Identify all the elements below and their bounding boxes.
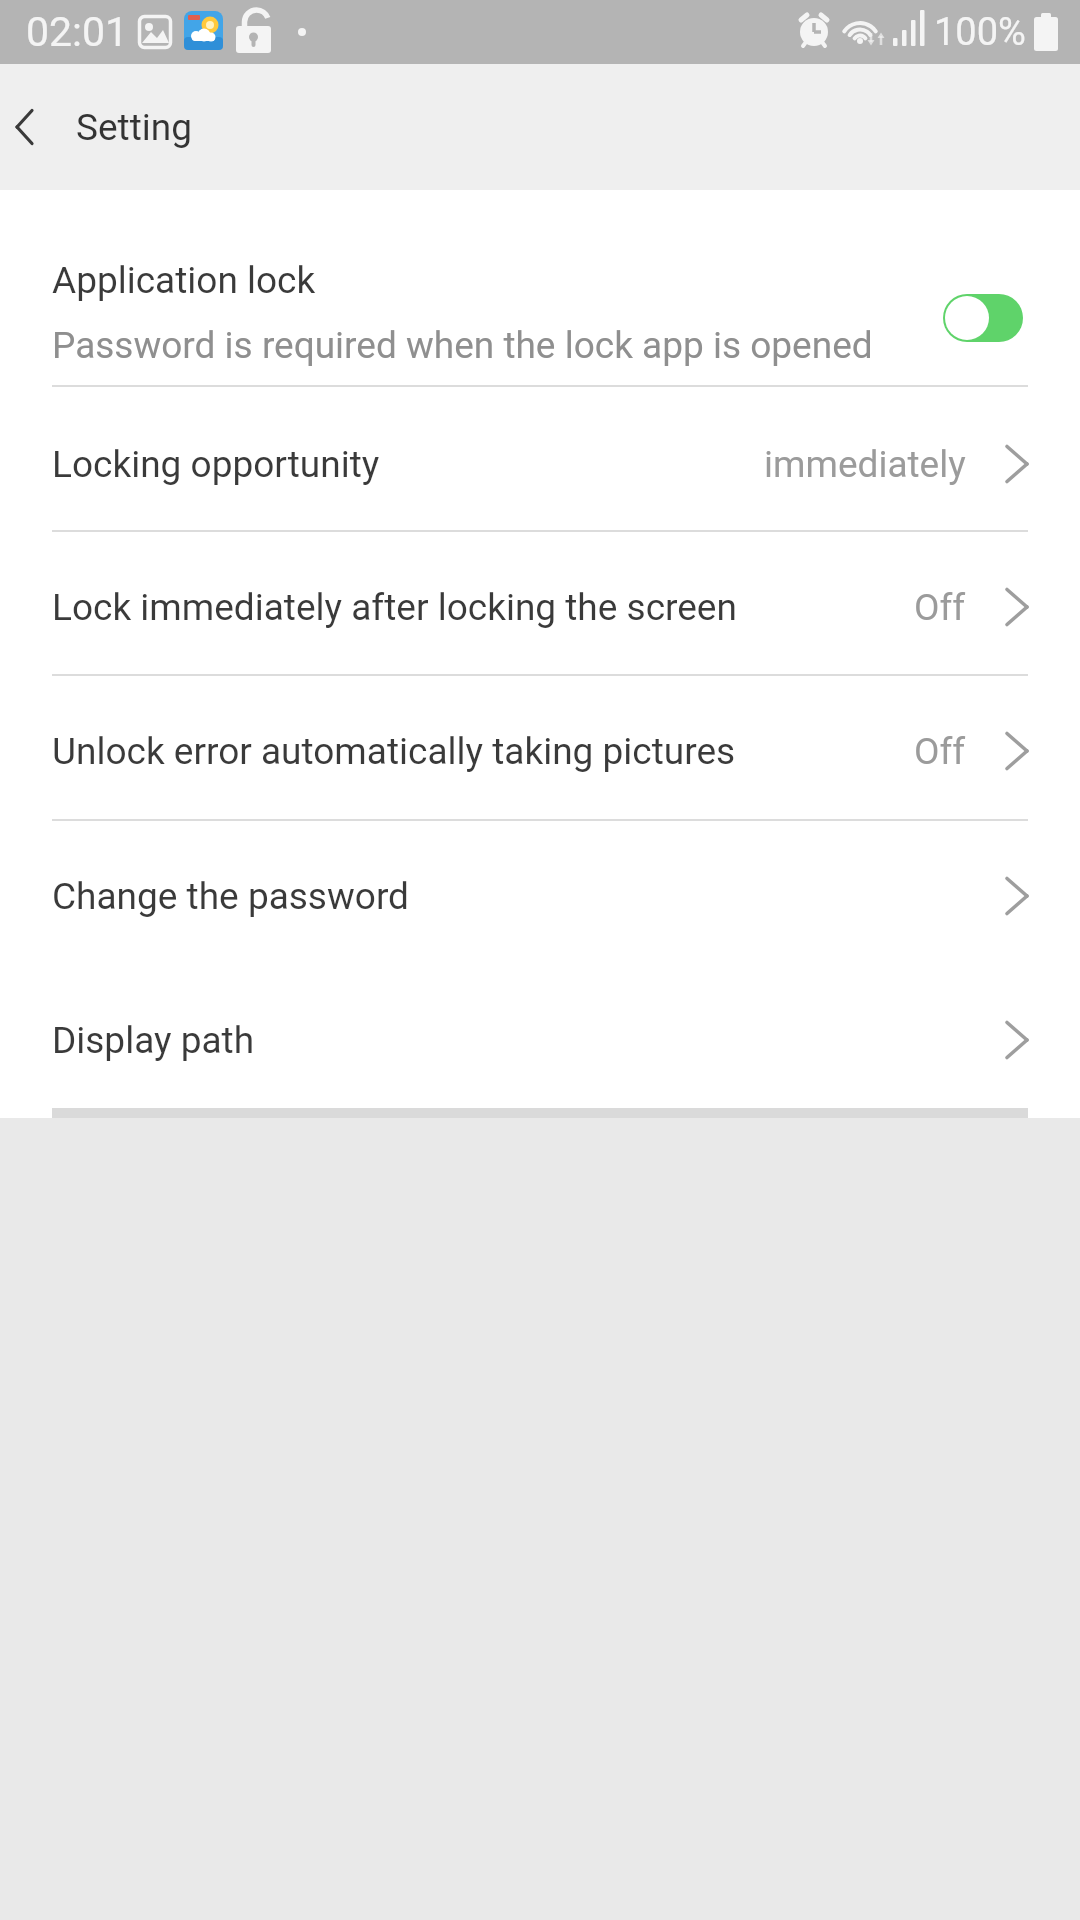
staticText: Display path	[52, 1019, 255, 1062]
staticText: 02:01	[26, 8, 129, 56]
button[interactable]	[0, 102, 50, 152]
staticText: Off	[914, 586, 966, 629]
button[interactable]: Application lock	[0, 212, 1080, 386]
staticText: Locking opportunity	[52, 443, 380, 486]
button[interactable]: Locking opportunity	[0, 392, 1080, 536]
staticText: Unlock error automatically taking pictur…	[52, 730, 736, 773]
staticText: immediately	[764, 443, 966, 486]
button[interactable]: Unlock error automatically taking pictur…	[0, 679, 1080, 823]
staticText: Change the password	[52, 875, 409, 918]
staticText: Application lock	[52, 259, 316, 302]
staticText: Off	[914, 730, 966, 773]
button[interactable]: Lock immediately after locking the scree…	[0, 535, 1080, 679]
button[interactable]: Change the password	[0, 824, 1080, 968]
staticText: Setting	[76, 106, 193, 149]
button[interactable]: Display path	[0, 968, 1080, 1112]
staticText: Password is required when the lock app i…	[52, 324, 873, 367]
staticText: 100%	[934, 10, 1026, 55]
staticText: Lock immediately after locking the scree…	[52, 586, 737, 629]
button[interactable]	[943, 294, 1023, 342]
